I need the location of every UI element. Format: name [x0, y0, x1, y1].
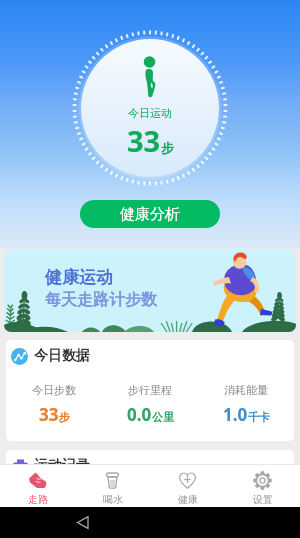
staticText: 运动记录: [34, 457, 90, 475]
staticText: 1.0: [223, 403, 248, 426]
staticText: 今日数据: [34, 347, 90, 365]
staticText: 健康运动: [45, 267, 113, 288]
staticText: 步行里程: [128, 383, 172, 397]
button[interactable]: Health: [150, 465, 225, 507]
staticText: 步: [59, 410, 70, 424]
staticText: 喝水: [103, 493, 123, 506]
staticText: 今日步数: [32, 383, 76, 397]
staticText: 健康分析: [120, 205, 180, 224]
button[interactable]: Settings: [225, 465, 300, 507]
staticText: 33: [39, 403, 59, 426]
staticText: 0.0: [127, 403, 152, 426]
staticText: 千卡: [248, 410, 270, 424]
staticText: 33: [127, 121, 161, 160]
staticText: 消耗能量: [224, 383, 268, 397]
staticText: 走路: [28, 493, 48, 506]
button[interactable]: Drink water: [75, 465, 150, 507]
staticText: 每天走路计步数: [45, 290, 157, 310]
button[interactable]: Walk: [0, 465, 75, 507]
staticText: 步: [161, 140, 174, 156]
button[interactable]: 健康分析: [80, 200, 220, 228]
staticText: 今日运动: [128, 106, 172, 120]
staticText: 健康: [178, 493, 198, 506]
staticText: 设置: [253, 493, 273, 506]
staticText: 公里: [152, 410, 174, 424]
button[interactable]: 健康运动: [4, 250, 296, 332]
